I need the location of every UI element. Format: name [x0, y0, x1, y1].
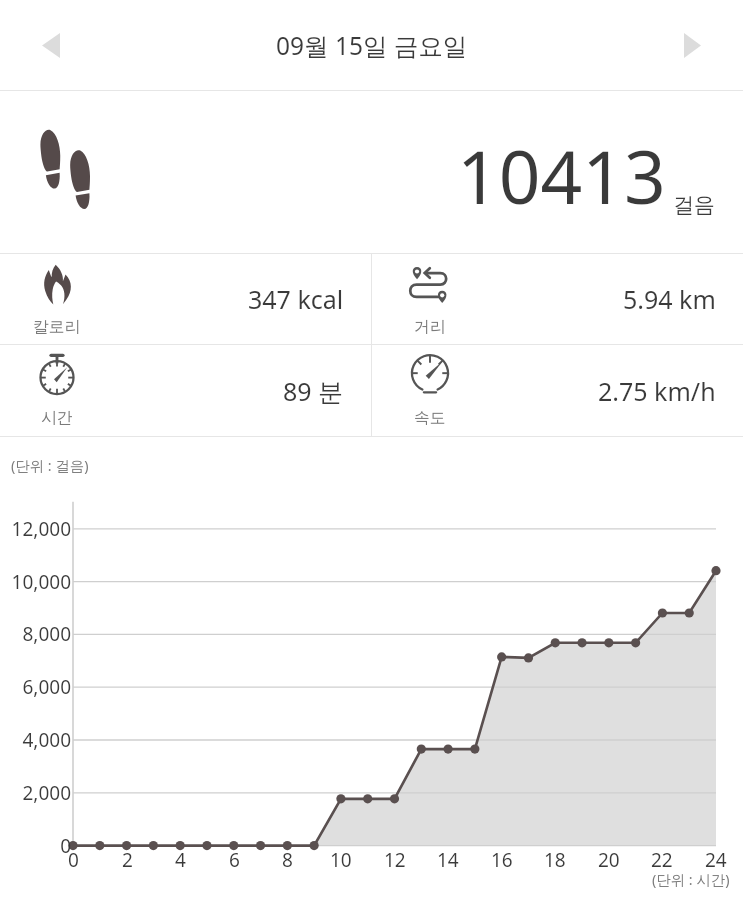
staticText: 0: [60, 833, 71, 859]
staticText: 4: [175, 847, 186, 873]
staticText: 347 kcal: [248, 282, 344, 316]
staticText: 6,000: [22, 674, 71, 700]
button[interactable]: 속도: [372, 345, 743, 436]
button[interactable]: 시간: [0, 345, 371, 436]
staticText: 6: [229, 847, 240, 873]
staticText: 12,000: [11, 516, 71, 542]
staticText: 22: [651, 847, 673, 873]
staticText: 속도: [414, 408, 446, 428]
staticText: 5.94 km: [623, 282, 716, 316]
staticText: 2: [122, 847, 133, 873]
button[interactable]: 칼로리: [0, 254, 371, 344]
staticText: 10413: [457, 126, 666, 225]
staticText: 2.75 km/h: [598, 374, 716, 408]
staticText: 4,000: [22, 727, 71, 753]
staticText: 0: [68, 847, 79, 873]
staticText: 12: [384, 847, 406, 873]
staticText: 칼로리: [33, 317, 81, 337]
staticText: (단위 : 걸음): [11, 456, 89, 476]
button[interactable]: Next day: [662, 15, 722, 75]
staticText: 89 분: [283, 374, 344, 408]
staticText: 8,000: [22, 621, 71, 647]
button[interactable]: Previous day: [21, 15, 81, 75]
staticText: 걸음: [673, 192, 715, 218]
staticText: 2,000: [22, 780, 71, 806]
staticText: 시간: [41, 408, 73, 428]
staticText: 20: [598, 847, 620, 873]
staticText: 거리: [414, 317, 446, 337]
staticText: 14: [437, 847, 459, 873]
staticText: 10,000: [11, 569, 71, 595]
button[interactable]: 10413: [0, 91, 743, 253]
staticText: 18: [544, 847, 566, 873]
staticText: (단위 : 시간): [652, 870, 730, 890]
staticText: 24: [705, 847, 727, 873]
staticText: 10: [330, 847, 352, 873]
staticText: 16: [491, 847, 513, 873]
button[interactable]: 거리: [372, 254, 743, 344]
staticText: 8: [282, 847, 293, 873]
staticText: 09월 15일 금요일: [276, 29, 468, 62]
